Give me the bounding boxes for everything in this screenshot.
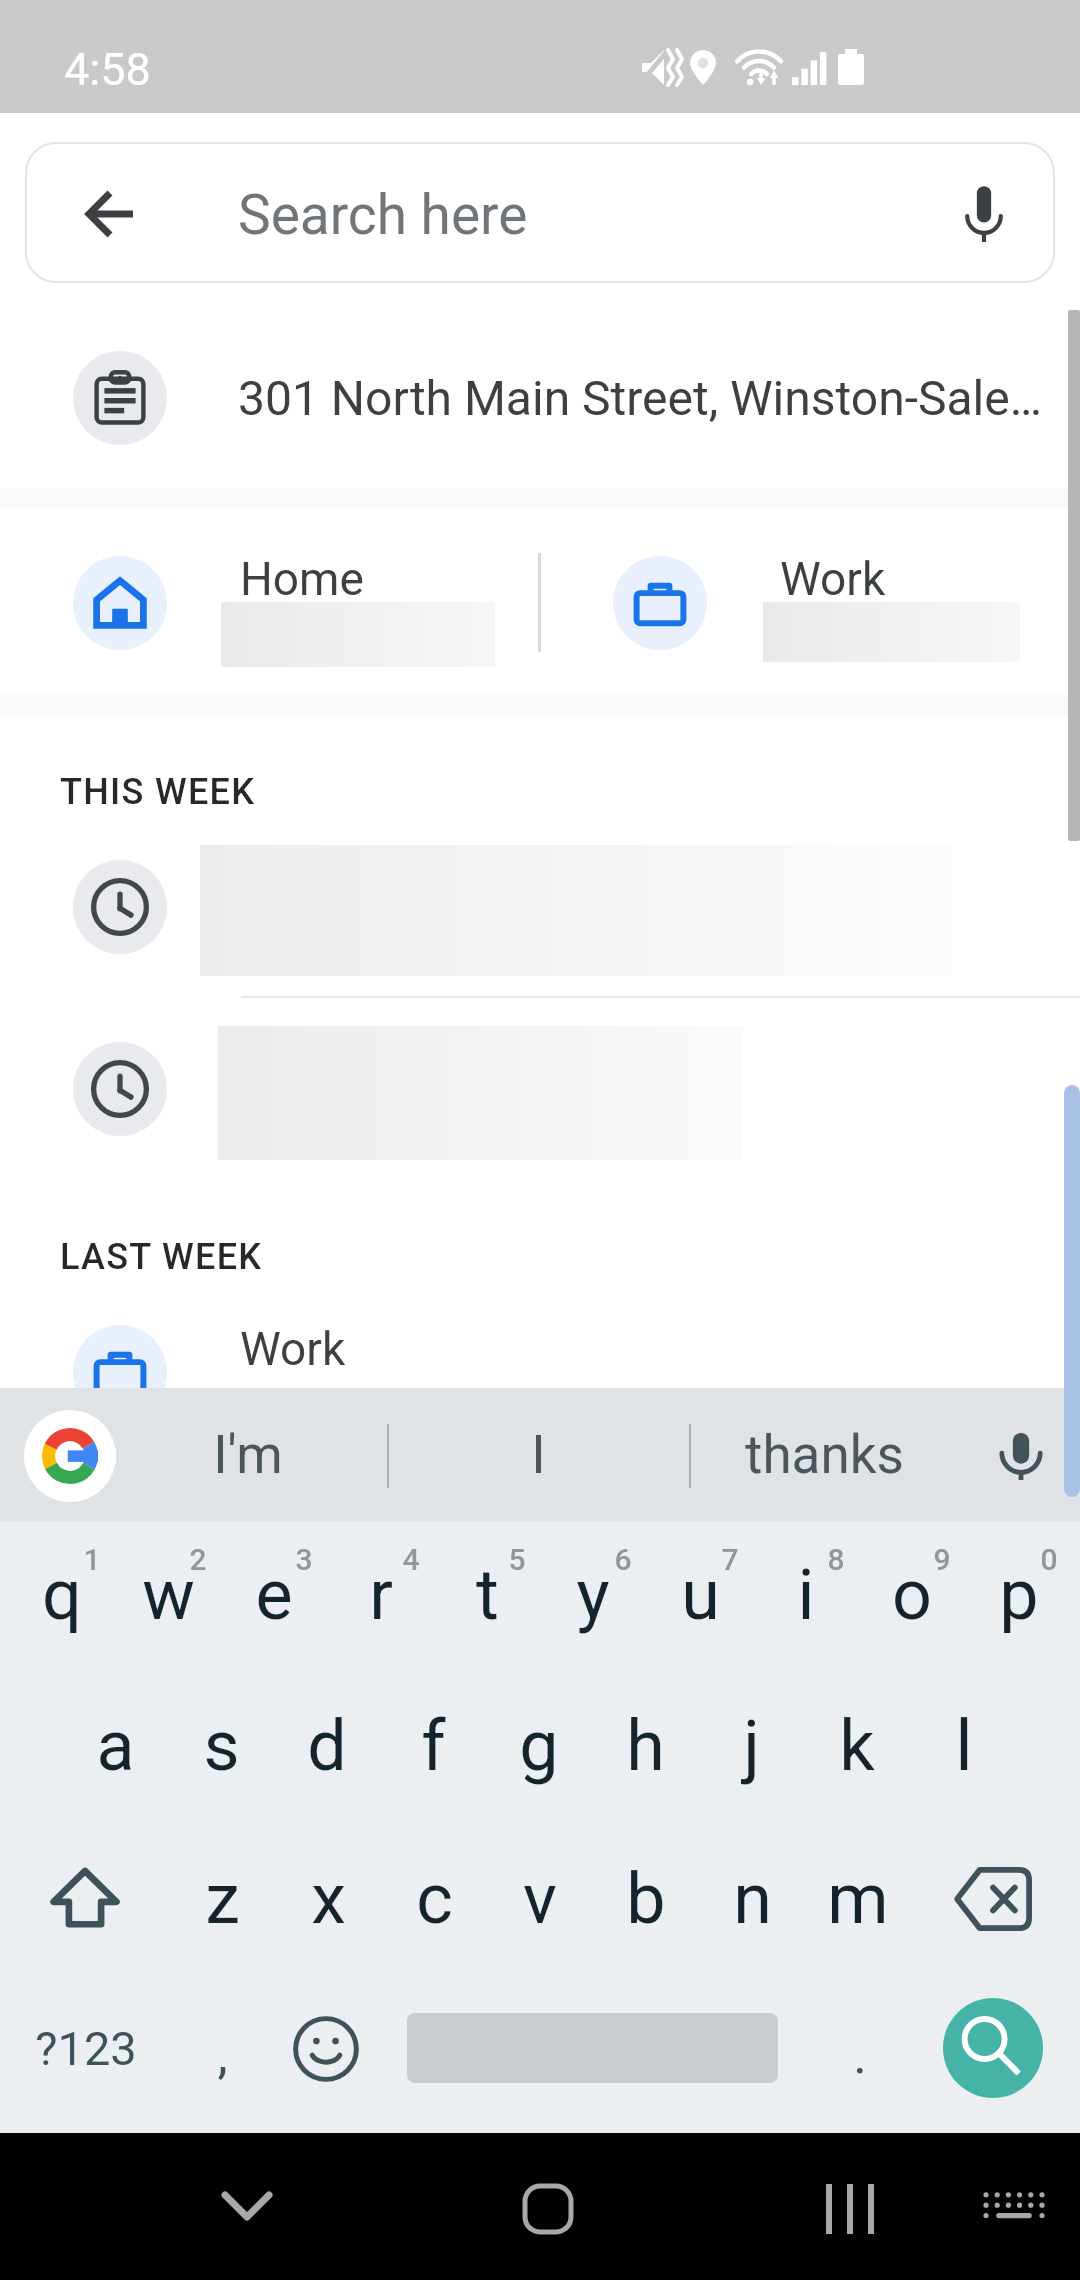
staticText: Work <box>240 1322 346 1376</box>
staticText: o <box>892 1554 932 1636</box>
staticText: 6 <box>614 1542 632 1577</box>
button[interactable]: v <box>487 1829 593 1969</box>
staticText: t <box>476 1554 499 1636</box>
button[interactable]: t <box>434 1525 540 1665</box>
staticText: i <box>797 1554 815 1636</box>
button[interactable]: n <box>699 1829 805 1969</box>
button[interactable]: l <box>911 1676 1017 1816</box>
staticText: 1 <box>83 1542 101 1577</box>
button[interactable]: Change keyboard <box>954 2150 1074 2262</box>
button[interactable] <box>0 1000 1080 1176</box>
staticText: 5 <box>508 1542 526 1577</box>
staticText: q <box>42 1554 82 1636</box>
staticText: f <box>421 1705 446 1787</box>
button[interactable]: thanks <box>679 1388 969 1522</box>
button[interactable]: x <box>275 1829 381 1969</box>
staticText: w <box>142 1554 195 1636</box>
button[interactable]: m <box>805 1829 911 1969</box>
staticText: Search here <box>238 183 528 247</box>
button[interactable]: y <box>540 1525 646 1665</box>
staticText: z <box>205 1858 240 1940</box>
staticText: ?123 <box>35 2021 137 2076</box>
button[interactable]: Voice input <box>985 1420 1057 1492</box>
staticText: 4 <box>402 1542 420 1577</box>
button[interactable]: h <box>592 1676 698 1816</box>
button[interactable] <box>0 1300 1080 1430</box>
staticText: LAST WEEK <box>60 1236 263 1278</box>
staticText: , <box>217 2025 228 2086</box>
button[interactable]: Voice search <box>938 167 1030 259</box>
button[interactable]: p <box>966 1525 1072 1665</box>
button[interactable]: c <box>381 1829 487 1969</box>
button[interactable]: a <box>62 1676 168 1816</box>
button[interactable]: g <box>486 1676 592 1816</box>
staticText: k <box>839 1705 875 1787</box>
staticText: thanks <box>745 1424 904 1486</box>
button[interactable]: Recent apps <box>790 2153 910 2265</box>
staticText: v <box>523 1858 557 1940</box>
staticText: 0 <box>1040 1542 1058 1577</box>
staticText: Home <box>240 552 364 606</box>
button[interactable] <box>0 312 1080 488</box>
button[interactable]: j <box>698 1676 804 1816</box>
staticText: I <box>531 1424 546 1486</box>
button[interactable]: Hide keyboard <box>187 2150 307 2262</box>
staticText: n <box>733 1858 772 1940</box>
button[interactable]: w <box>115 1525 221 1665</box>
staticText: 2 <box>189 1542 207 1577</box>
staticText: l <box>955 1705 973 1787</box>
staticText: I'm <box>213 1424 283 1486</box>
button[interactable]: q <box>9 1525 115 1665</box>
staticText: a <box>96 1705 135 1787</box>
staticText: 7 <box>721 1542 739 1577</box>
staticText: . <box>853 2025 867 2086</box>
staticText: j <box>743 1705 760 1787</box>
staticText: u <box>681 1554 720 1636</box>
button[interactable]: s <box>168 1676 274 1816</box>
button[interactable]: u <box>647 1525 753 1665</box>
staticText: Work <box>780 552 886 606</box>
staticText: 9 <box>933 1542 951 1577</box>
button[interactable]: Emoji <box>274 1977 378 2121</box>
button[interactable]: I <box>388 1388 688 1522</box>
staticText: h <box>626 1705 665 1787</box>
button[interactable]: Back <box>64 168 156 260</box>
button[interactable]: , <box>172 1985 272 2125</box>
button[interactable]: k <box>804 1676 910 1816</box>
button[interactable] <box>25 142 1055 283</box>
staticText: x <box>311 1858 346 1940</box>
button[interactable]: ?123 <box>6 1978 166 2118</box>
button[interactable]: i <box>753 1525 859 1665</box>
button[interactable]: b <box>593 1829 699 1969</box>
button[interactable]: e <box>221 1525 327 1665</box>
button[interactable] <box>540 508 1080 695</box>
button[interactable] <box>0 820 1080 996</box>
staticText: c <box>416 1858 453 1940</box>
button[interactable]: Shift <box>22 1827 148 1971</box>
button[interactable]: z <box>169 1829 275 1969</box>
button[interactable] <box>0 508 540 695</box>
staticText: d <box>307 1705 347 1787</box>
staticText: e <box>255 1554 293 1636</box>
button[interactable]: Google Assistant <box>24 1410 116 1502</box>
staticText: g <box>519 1705 559 1787</box>
staticText: p <box>999 1554 1039 1636</box>
button[interactable]: I'm <box>124 1388 372 1522</box>
staticText: y <box>576 1554 610 1636</box>
staticText: THIS WEEK <box>60 771 256 813</box>
staticText: b <box>626 1858 666 1940</box>
staticText: 301 North Main Street, Winston-Sale… <box>238 370 1042 426</box>
staticText: s <box>203 1705 240 1787</box>
staticText: r <box>369 1554 393 1636</box>
button[interactable]: r <box>328 1525 434 1665</box>
button[interactable]: Home <box>488 2153 608 2265</box>
button[interactable]: f <box>380 1676 486 1816</box>
staticText: m <box>827 1858 889 1940</box>
button[interactable]: o <box>859 1525 965 1665</box>
staticText: 8 <box>827 1542 845 1577</box>
button[interactable]: Backspace <box>930 1827 1056 1971</box>
button[interactable]: . <box>810 1985 910 2125</box>
button[interactable]: Search <box>943 1998 1043 2098</box>
button[interactable]: d <box>274 1676 380 1816</box>
